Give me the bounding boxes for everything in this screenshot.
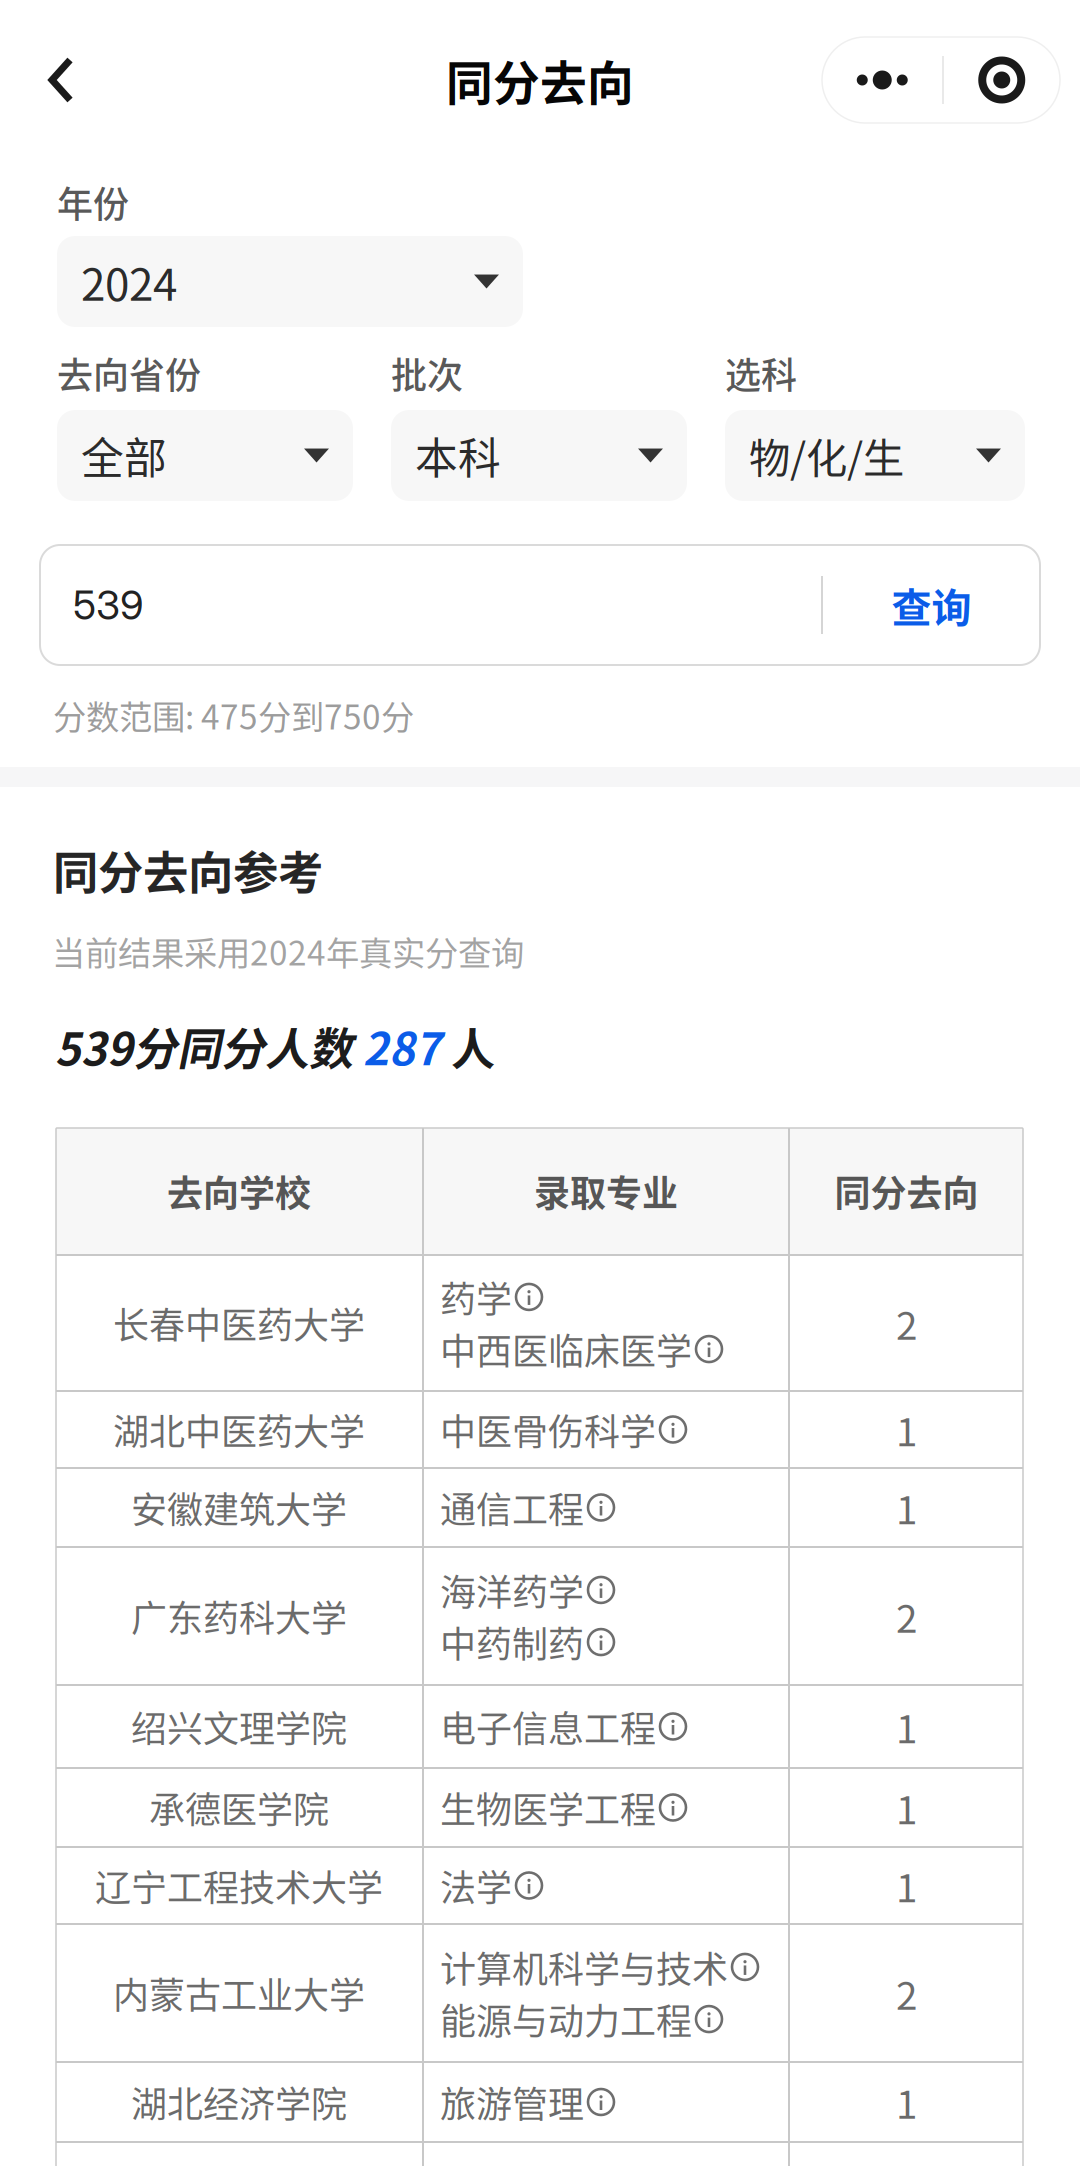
staticText: 539 — [73, 581, 144, 629]
button[interactable]: 查询 — [823, 546, 1040, 664]
staticText: 通信工程 — [440, 1481, 584, 1533]
staticText: 广东药科大学 — [131, 1590, 347, 1642]
staticText: 安徽建筑大学 — [131, 1481, 347, 1533]
button[interactable]: Close mini program — [944, 37, 1060, 123]
staticText: 能源与动力工程 — [440, 1993, 692, 2045]
staticText: 去向省份 — [57, 347, 201, 399]
staticText: 本科 — [415, 425, 501, 486]
staticText: 人 — [441, 1014, 495, 1078]
staticText: 中药制药 — [440, 1616, 584, 1668]
staticText: 1 — [896, 1479, 917, 1535]
staticText: 年份 — [57, 176, 129, 228]
staticText: 录取专业 — [534, 1165, 678, 1217]
staticText: 1 — [896, 1698, 917, 1754]
staticText: 计算机科学与技术 — [440, 1941, 728, 1993]
staticText: 287 — [363, 1014, 441, 1078]
staticText: 药学 — [440, 1271, 512, 1323]
staticText: 查询 — [891, 576, 971, 634]
staticText: 全部 — [81, 425, 167, 486]
staticText: 2024 — [81, 250, 177, 313]
staticText: 2 — [896, 1588, 917, 1644]
staticText: 1 — [896, 1779, 917, 1835]
staticText: 同分去向 — [446, 46, 634, 114]
staticText: 绍兴文理学院 — [131, 1700, 347, 1752]
staticText: 2 — [896, 1965, 917, 2021]
staticText: 539分同分人数 — [55, 1014, 363, 1078]
staticText: 内蒙古工业大学 — [113, 1967, 365, 2019]
staticText: 湖北中医药大学 — [113, 1403, 365, 1455]
staticText: 长春中医药大学 — [113, 1297, 365, 1349]
button[interactable]: 2024 — [57, 236, 523, 327]
staticText: 中西医临床医学 — [440, 1323, 692, 1375]
staticText: 同分去向 — [834, 1165, 978, 1217]
staticText: 当前结果采用2024年真实分查询 — [52, 927, 524, 975]
staticText: 湖北经济学院 — [131, 2076, 347, 2128]
staticText: 旅游管理 — [440, 2076, 584, 2128]
button[interactable]: 全部 — [57, 410, 353, 501]
button[interactable]: More — [822, 37, 942, 123]
staticText: 同分去向参考 — [53, 837, 323, 903]
button[interactable]: 本科 — [391, 410, 687, 501]
staticText: 辽宁工程技术大学 — [95, 1859, 383, 1911]
staticText: 1 — [896, 1857, 917, 1913]
staticText: 生物医学工程 — [440, 1781, 656, 1833]
staticText: 法学 — [440, 1859, 512, 1911]
button[interactable]: 物/化/生 — [725, 410, 1025, 501]
staticText: 中医骨伤科学 — [440, 1403, 656, 1455]
staticText: 1 — [896, 2074, 917, 2130]
staticText: 分数范围: 475分到750分 — [53, 691, 414, 739]
staticText: 物/化/生 — [749, 426, 904, 485]
staticText: 1 — [896, 1401, 917, 1457]
staticText: 海洋药学 — [440, 1564, 584, 1616]
button[interactable]: Back — [0, 25, 122, 135]
staticText: 批次 — [391, 347, 463, 399]
staticText: 选科 — [725, 347, 797, 399]
staticText: 承德医学院 — [149, 1781, 329, 1833]
staticText: 2 — [896, 1295, 917, 1351]
staticText: 去向学校 — [167, 1165, 311, 1217]
staticText: 电子信息工程 — [440, 1700, 656, 1752]
